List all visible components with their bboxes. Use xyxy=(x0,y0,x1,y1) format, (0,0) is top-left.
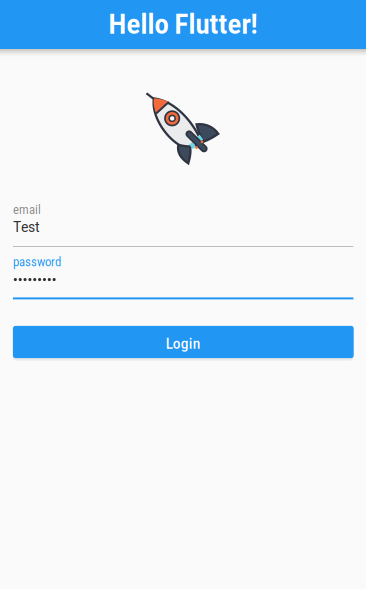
button[interactable]: Login xyxy=(13,326,354,358)
staticText: Hello Flutter! xyxy=(108,9,257,40)
staticText: password xyxy=(13,255,61,269)
staticText: email xyxy=(13,203,41,217)
staticText: Test xyxy=(13,218,40,236)
staticText: Login xyxy=(166,335,201,352)
